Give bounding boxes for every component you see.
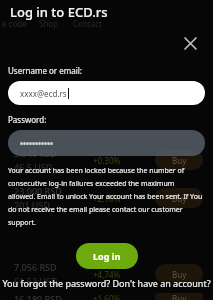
staticText: Buy — [172, 155, 187, 166]
staticText: ••••••••••• — [20, 138, 54, 149]
staticText: Username or email: — [8, 65, 82, 76]
button[interactable]: ••••••••••• — [8, 130, 205, 156]
staticText: 16.180 RSD — [14, 293, 62, 300]
staticText: 23.000 RSD — [14, 185, 62, 197]
staticText: 201 USD — [14, 199, 50, 211]
staticText: Log in — [93, 250, 121, 262]
button[interactable]: You forgot the password? Don't have an a… — [0, 272, 213, 294]
staticText: e code — [2, 18, 27, 29]
button[interactable]: Buy — [155, 188, 203, 208]
staticText: Your account has been locked because the… — [8, 166, 203, 227]
staticText: +1,60% — [93, 293, 121, 300]
staticText: 46,5 USD — [14, 161, 53, 173]
button[interactable]: Buy — [155, 264, 203, 284]
staticText: 7.056 RSD — [14, 261, 57, 273]
staticText: Contact — [73, 18, 102, 29]
staticText: You forgot the password? Don't have an a… — [0, 277, 213, 289]
staticText: 61,52 USD — [14, 275, 58, 287]
staticText: Shop — [39, 18, 59, 29]
staticText: +4,74% — [93, 269, 121, 280]
button[interactable]: Buy — [155, 150, 203, 170]
button[interactable]: xxxx@ecd.rs — [8, 81, 205, 105]
staticText: Buy — [172, 293, 187, 300]
button[interactable]: Buy — [155, 293, 203, 300]
staticText: Buy — [172, 193, 187, 204]
button[interactable]: Log in — [76, 243, 138, 269]
button[interactable]: Close — [179, 32, 201, 54]
staticText: Password: — [8, 114, 47, 125]
staticText: Log in to ECD.rs — [10, 3, 108, 21]
staticText: +2,10% — [93, 193, 121, 204]
staticText: Buy — [172, 269, 187, 280]
staticText: xxxx@ecd.rs — [20, 88, 67, 99]
staticText: +0,30% — [93, 155, 121, 166]
staticText: 5.340 RSD — [14, 147, 57, 159]
